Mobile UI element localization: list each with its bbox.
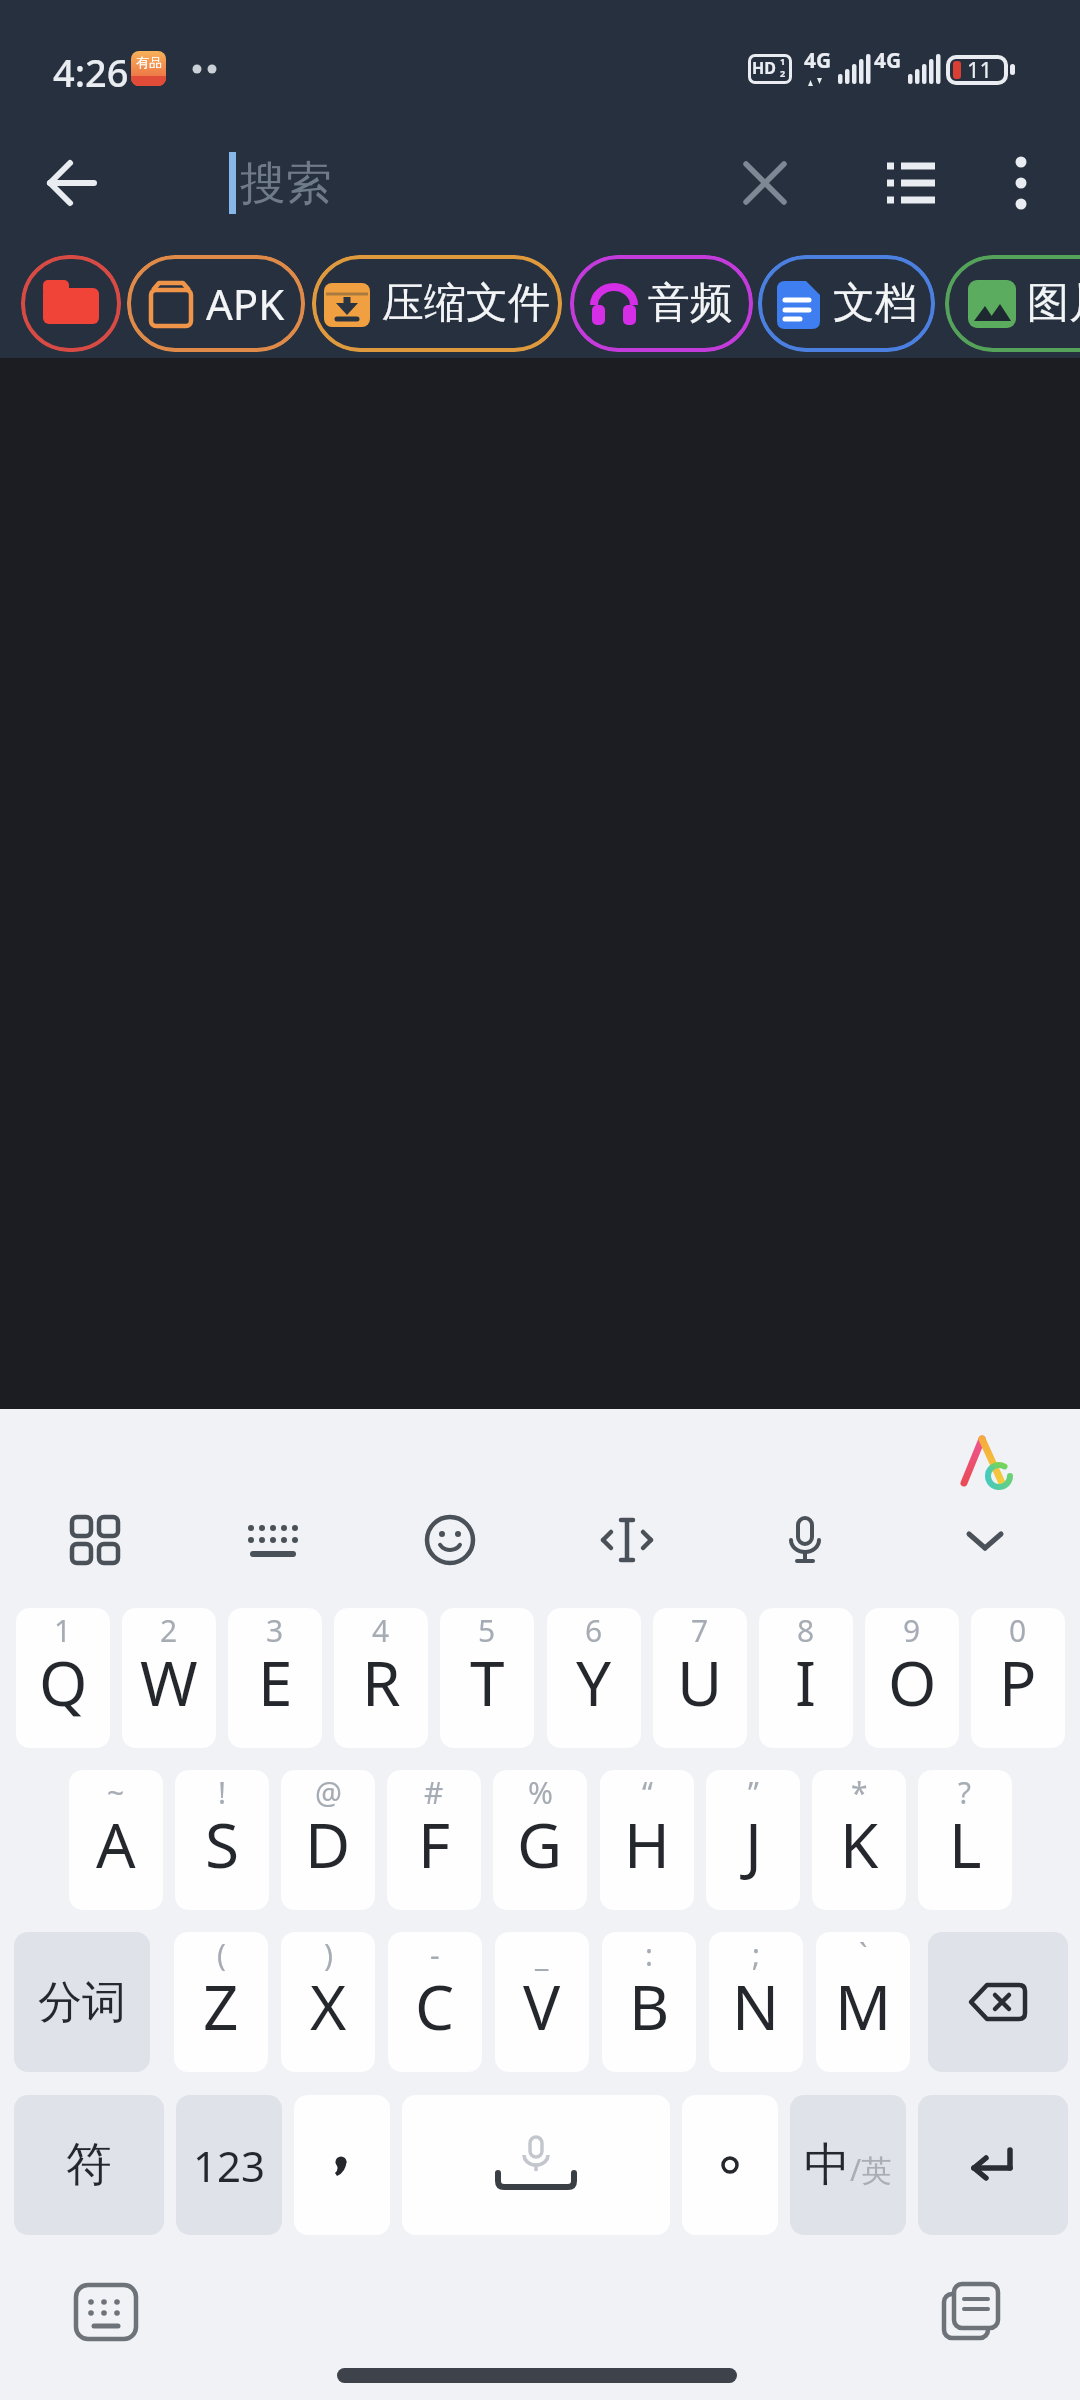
button[interactable]: “	[600, 1770, 694, 1910]
button[interactable]	[928, 1932, 1068, 2072]
button[interactable]	[61, 1506, 129, 1574]
staticText: P	[999, 1640, 1037, 1724]
button[interactable]: %	[493, 1770, 587, 1910]
staticText: X	[310, 1964, 347, 2048]
staticText: _	[535, 1934, 549, 1975]
button[interactable]: 文档	[758, 255, 935, 352]
staticText: C	[415, 1964, 455, 2048]
staticText: @	[315, 1772, 342, 1813]
staticText: G	[517, 1802, 563, 1886]
staticText: *	[851, 1772, 868, 1813]
staticText: 2	[780, 67, 786, 79]
button[interactable]	[682, 2095, 778, 2235]
staticText: H	[624, 1802, 670, 1886]
button[interactable]: *	[812, 1770, 906, 1910]
button[interactable]: 中	[790, 2095, 906, 2235]
staticText: HD	[752, 57, 776, 79]
button[interactable]: _	[495, 1932, 589, 2072]
staticText: 1	[54, 1610, 72, 1651]
staticText: 压缩文件	[382, 277, 550, 330]
button[interactable]: 图片	[945, 255, 1080, 352]
staticText: 9	[903, 1610, 921, 1651]
button[interactable]: 4	[334, 1608, 428, 1748]
staticText: /英	[850, 2149, 892, 2190]
staticText: Z	[203, 1964, 239, 2048]
button[interactable]: @	[281, 1770, 375, 1910]
button[interactable]	[294, 2095, 390, 2235]
button[interactable]	[771, 1506, 839, 1574]
staticText: )	[324, 1934, 333, 1975]
staticText: I	[795, 1640, 817, 1724]
button[interactable]: -	[388, 1932, 482, 2072]
button[interactable]	[21, 255, 121, 352]
button[interactable]: #	[387, 1770, 481, 1910]
staticText: 6	[585, 1610, 603, 1651]
staticText: (	[217, 1934, 226, 1975]
staticText: 2	[160, 1610, 178, 1651]
staticText: 有品	[136, 54, 162, 70]
button[interactable]	[731, 149, 799, 217]
button[interactable]: APK	[127, 255, 305, 352]
staticText: J	[745, 1802, 762, 1886]
staticText: F	[418, 1802, 451, 1886]
button[interactable]: 1	[16, 1608, 110, 1748]
staticText: 11	[967, 54, 993, 84]
button[interactable]	[402, 2095, 670, 2235]
staticText: 4:26	[53, 46, 129, 98]
staticText: S	[205, 1802, 240, 1886]
staticText: %	[528, 1772, 553, 1813]
staticText: M	[835, 1964, 892, 2048]
button[interactable]: 3	[228, 1608, 322, 1748]
staticText: 文档	[833, 277, 917, 330]
staticText: L	[949, 1802, 982, 1886]
button[interactable]: 9	[865, 1608, 959, 1748]
button[interactable]: 分词	[14, 1932, 150, 2072]
button[interactable]	[918, 2095, 1068, 2235]
staticText: Q	[39, 1640, 88, 1724]
button[interactable]: 123	[176, 2095, 282, 2235]
staticText: 123	[193, 2137, 266, 2194]
button[interactable]: 音频	[570, 255, 753, 352]
button[interactable]: 7	[653, 1608, 747, 1748]
staticText: 0	[1009, 1610, 1027, 1651]
button[interactable]: 2	[122, 1608, 216, 1748]
button[interactable]: ?	[918, 1770, 1012, 1910]
button[interactable]: ~	[69, 1770, 163, 1910]
staticText: 分词	[38, 1975, 126, 2030]
staticText: `	[859, 1934, 868, 1975]
staticText: U	[677, 1640, 723, 1724]
button[interactable]: 5	[440, 1608, 534, 1748]
button[interactable]	[987, 149, 1055, 217]
staticText: 3	[266, 1610, 284, 1651]
button[interactable]	[239, 1506, 307, 1574]
staticText: 4G	[874, 46, 902, 75]
button[interactable]: !	[175, 1770, 269, 1910]
button[interactable]: :	[602, 1932, 696, 2072]
staticText: 符	[66, 2136, 112, 2194]
button[interactable]: )	[281, 1932, 375, 2072]
staticText: A	[96, 1802, 136, 1886]
button[interactable]: 符	[14, 2095, 164, 2235]
staticText: ”	[748, 1772, 759, 1813]
button[interactable]: 0	[971, 1608, 1065, 1748]
button[interactable]: ”	[706, 1770, 800, 1910]
button[interactable]	[951, 1506, 1019, 1574]
staticText: 8	[797, 1610, 815, 1651]
button[interactable]: ;	[709, 1932, 803, 2072]
staticText: R	[362, 1640, 401, 1724]
button[interactable]: 6	[547, 1608, 641, 1748]
staticText: O	[888, 1640, 937, 1724]
button[interactable]	[416, 1506, 484, 1574]
staticText: K	[840, 1802, 879, 1886]
button[interactable]: 压缩文件	[312, 255, 562, 352]
button[interactable]: `	[816, 1932, 910, 2072]
staticText: 中	[804, 2136, 850, 2194]
button[interactable]	[877, 149, 945, 217]
staticText: 图片	[1027, 277, 1080, 330]
button[interactable]	[936, 2276, 1008, 2348]
button[interactable]: 8	[759, 1608, 853, 1748]
button[interactable]	[70, 2276, 142, 2348]
button[interactable]	[36, 147, 108, 219]
button[interactable]	[593, 1506, 661, 1574]
button[interactable]: (	[174, 1932, 268, 2072]
